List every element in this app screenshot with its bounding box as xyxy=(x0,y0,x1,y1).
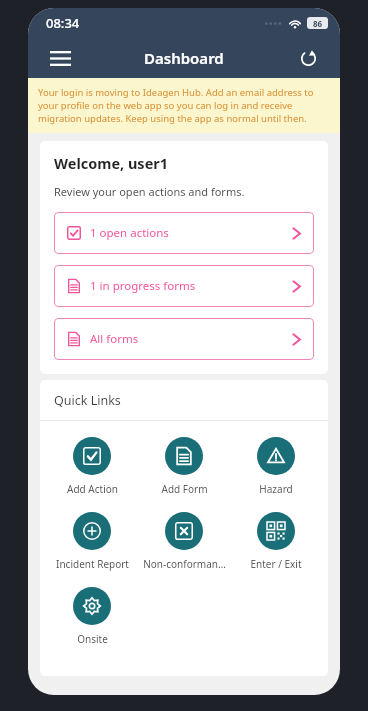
button[interactable]: Menu xyxy=(40,38,80,78)
staticText: Add Form xyxy=(161,482,208,496)
staticText: All forms xyxy=(90,331,139,347)
staticText: Hazard xyxy=(259,482,293,496)
staticText: Onsite xyxy=(77,632,108,646)
staticText: Enter / Exit xyxy=(250,557,302,571)
button[interactable]: Hazard xyxy=(230,435,322,498)
staticText: 86 xyxy=(313,18,323,29)
staticText: 08:34 xyxy=(46,14,80,32)
button[interactable]: Onsite xyxy=(46,585,138,648)
staticText: Incident Report xyxy=(56,557,129,571)
button[interactable]: Enter / Exit xyxy=(230,510,322,573)
staticText: 1 open actions xyxy=(90,225,169,241)
button[interactable]: Add Action xyxy=(46,435,138,498)
staticText: Your login is moving to Ideagen Hub. Add… xyxy=(38,86,330,125)
staticText: 1 in progress forms xyxy=(90,278,196,294)
staticText: Welcome, user1 xyxy=(54,153,169,173)
staticText: Non-conforman… xyxy=(143,557,226,571)
button[interactable]: 1 in progress forms xyxy=(54,265,314,307)
staticText: Quick Links xyxy=(54,392,121,409)
staticText: Add Action xyxy=(67,482,118,496)
button[interactable]: 1 open actions xyxy=(54,212,314,254)
button[interactable]: Non-conforman… xyxy=(138,510,230,573)
staticText: Dashboard xyxy=(144,48,224,68)
staticText: Review your open actions and forms. xyxy=(54,184,245,199)
button[interactable]: Incident Report xyxy=(46,510,138,573)
button[interactable]: All forms xyxy=(54,318,314,360)
button[interactable]: Add Form xyxy=(138,435,230,498)
button[interactable]: Refresh xyxy=(288,38,328,78)
